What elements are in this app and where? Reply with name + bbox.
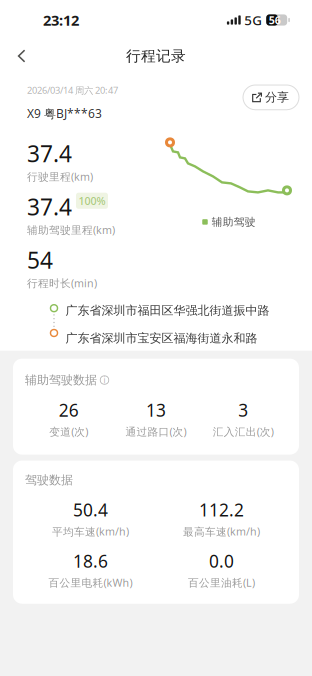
staticText: 广东省深圳市福田区华强北街道振中路	[65, 303, 269, 318]
staticText: 0.0	[209, 549, 234, 572]
staticText: 辅助驾驶里程(km)	[27, 223, 115, 237]
staticText: 百公里电耗(kWh)	[48, 575, 132, 590]
staticText: 50.4	[73, 498, 108, 521]
button[interactable]: 分享	[243, 85, 299, 110]
staticText: 最高车速(km/h)	[183, 524, 260, 539]
staticText: 13	[146, 398, 166, 421]
staticText: 驾驶数据	[25, 473, 73, 487]
staticText: 56	[269, 13, 281, 27]
staticText: 5G	[244, 11, 262, 29]
staticText: 分享	[265, 90, 289, 105]
staticText: 54	[27, 245, 53, 275]
staticText: 26	[59, 398, 79, 421]
staticText: X9 粤BJ***63	[27, 105, 102, 121]
staticText: 3	[238, 398, 248, 421]
staticText: 通过路口(次)	[125, 424, 186, 439]
staticText: 汇入汇出(次)	[213, 424, 274, 439]
button[interactable]: Back	[0, 40, 42, 72]
staticText: 行驶里程(km)	[27, 169, 93, 184]
staticText: 112.2	[199, 498, 244, 521]
staticText: 变道(次)	[49, 424, 88, 439]
staticText: 2026/03/14 周六 20:47	[27, 84, 118, 96]
staticText: 37.4	[27, 192, 72, 222]
staticText: 辅助驾驶	[212, 215, 256, 228]
staticText: 行程记录	[126, 47, 186, 65]
staticText: 行程时长(min)	[27, 276, 97, 290]
staticText: 百公里油耗(L)	[188, 575, 255, 590]
staticText: i	[103, 375, 105, 385]
staticText: 广东省深圳市宝安区福海街道永和路	[65, 331, 257, 346]
staticText: 辅助驾驶数据	[25, 373, 97, 387]
staticText: 18.6	[73, 549, 108, 572]
staticText: 100%	[78, 194, 105, 208]
staticText: 平均车速(km/h)	[52, 524, 129, 539]
staticText: 37.4	[27, 138, 72, 168]
staticText: 23:12	[43, 10, 79, 30]
